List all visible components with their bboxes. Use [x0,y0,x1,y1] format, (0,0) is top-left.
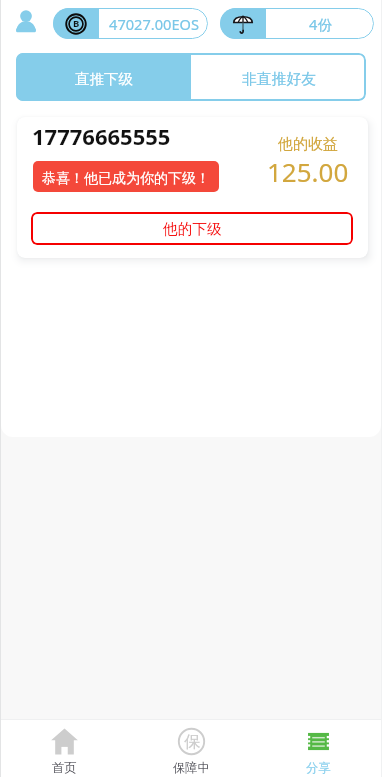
staticText: 4份 [309,14,332,34]
button[interactable]: 分享 [255,720,382,777]
staticText: 125.00 [267,154,349,189]
button[interactable]: Balance [53,8,208,39]
button[interactable]: 17776665555 [17,117,368,258]
staticText: 恭喜！他已成为你的下级！ [42,170,210,188]
staticText: 非直推好友 [242,70,316,89]
button[interactable]: 非直推好友 [191,53,366,101]
staticText: 47027.00EOS [109,14,199,34]
button[interactable]: Insurance shares [220,8,374,39]
button[interactable]: Profile [12,7,40,35]
button[interactable]: 保 [128,720,255,777]
staticText: 他的下级 [163,220,222,239]
staticText: 保 [184,732,200,752]
staticText: 分享 [306,760,331,775]
staticText: 保障中 [173,760,210,775]
staticText: 17776665555 [32,121,171,151]
button[interactable]: 直推下级 [16,53,191,101]
staticText: 首页 [52,760,77,775]
staticText: 他的收益 [278,135,338,154]
button[interactable]: 首页 [0,720,128,777]
staticText: 直推下级 [75,70,133,88]
button[interactable]: 他的下级 [31,212,353,245]
staticText: B [73,17,80,30]
